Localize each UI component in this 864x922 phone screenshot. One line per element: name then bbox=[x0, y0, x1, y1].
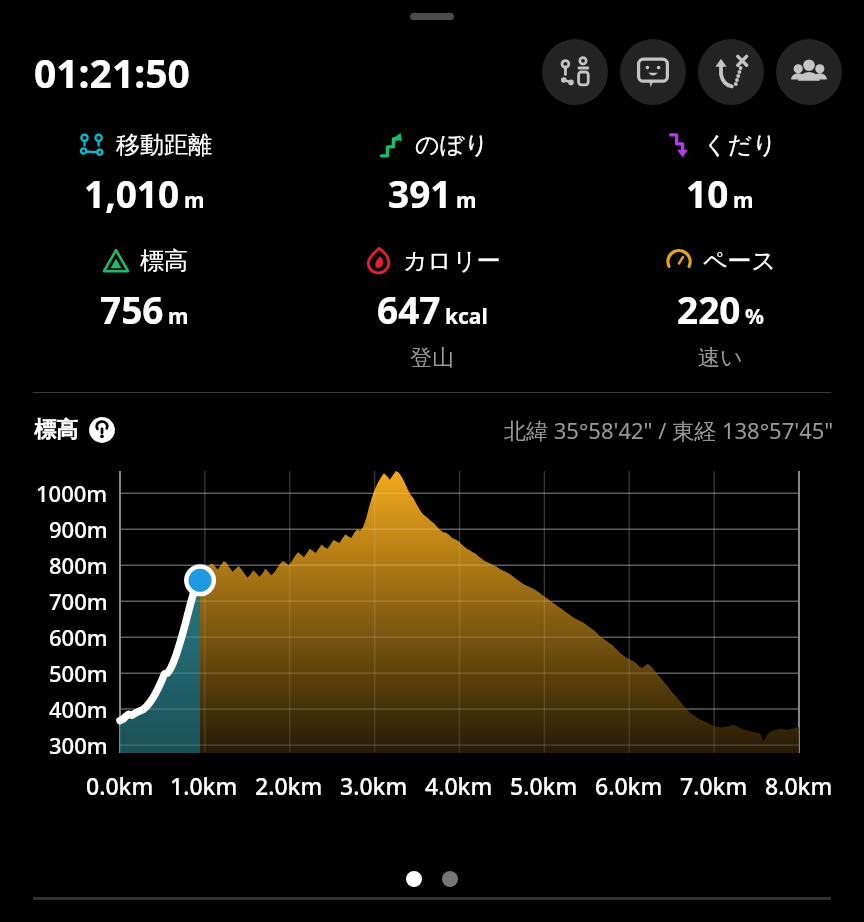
staticText: 6.0km bbox=[595, 770, 663, 801]
staticText: 1000m bbox=[36, 478, 108, 508]
button[interactable] bbox=[406, 871, 422, 887]
staticText: m bbox=[733, 186, 754, 215]
staticText: 900m bbox=[49, 514, 108, 544]
button[interactable]: 移動距離 bbox=[0, 130, 288, 218]
button[interactable]: のぼり bbox=[288, 130, 576, 218]
button[interactable] bbox=[442, 871, 458, 887]
button[interactable]: Message bbox=[620, 39, 686, 105]
staticText: 標高 bbox=[34, 416, 78, 444]
staticText: 北緯 35°58'42" / 東経 138°57'45" bbox=[504, 415, 834, 445]
button[interactable]: Members bbox=[776, 39, 842, 105]
button[interactable]: くだり bbox=[576, 130, 864, 218]
staticText: 4.0km bbox=[425, 770, 493, 801]
staticText: 300m bbox=[49, 730, 108, 760]
staticText: カロリー bbox=[403, 246, 501, 276]
staticText: m bbox=[184, 186, 205, 215]
staticText: 0.0km bbox=[86, 770, 154, 801]
button[interactable]: ペース bbox=[576, 246, 864, 372]
staticText: 220 bbox=[677, 284, 741, 334]
staticText: 647 bbox=[377, 284, 441, 334]
staticText: 500m bbox=[49, 658, 108, 688]
staticText: くだり bbox=[703, 130, 777, 160]
staticText: ペース bbox=[703, 246, 777, 276]
staticText: 756 bbox=[100, 284, 164, 334]
staticText: 5.0km bbox=[510, 770, 578, 801]
button[interactable]: カロリー bbox=[288, 246, 576, 372]
staticText: 800m bbox=[49, 550, 108, 580]
button[interactable]: 標高 bbox=[0, 246, 288, 334]
staticText: 標高 bbox=[140, 246, 188, 276]
button[interactable]: Route points bbox=[542, 39, 608, 105]
staticText: 400m bbox=[49, 694, 108, 724]
staticText: 2.0km bbox=[255, 770, 323, 801]
button[interactable]: Help bbox=[88, 416, 116, 444]
staticText: 3.0km bbox=[340, 770, 408, 801]
staticText: kcal bbox=[445, 302, 488, 331]
staticText: 移動距離 bbox=[116, 130, 212, 160]
staticText: m bbox=[456, 186, 477, 215]
staticText: 1.0km bbox=[170, 770, 238, 801]
staticText: のぼり bbox=[415, 130, 489, 160]
staticText: % bbox=[745, 302, 764, 331]
staticText: 10 bbox=[686, 168, 729, 218]
staticText: 7.0km bbox=[680, 770, 748, 801]
staticText: 1,010 bbox=[84, 168, 180, 218]
staticText: 8.0km bbox=[765, 770, 833, 801]
staticText: 登山 bbox=[410, 344, 454, 372]
button[interactable]: Reroute bbox=[698, 39, 764, 105]
staticText: 速い bbox=[698, 344, 743, 372]
staticText: 600m bbox=[49, 622, 108, 652]
staticText: 01:21:50 bbox=[34, 46, 190, 99]
staticText: 700m bbox=[49, 586, 108, 616]
staticText: 391 bbox=[388, 168, 452, 218]
staticText: m bbox=[168, 302, 189, 331]
